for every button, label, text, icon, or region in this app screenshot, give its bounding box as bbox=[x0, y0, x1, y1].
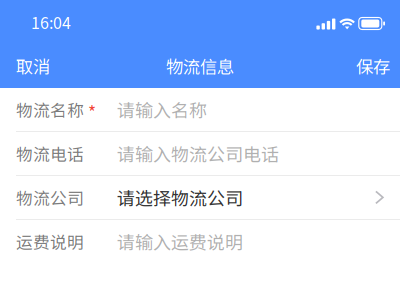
staticText: 取消 bbox=[16, 53, 50, 79]
button[interactable]: 物流电话 bbox=[0, 132, 400, 176]
button[interactable]: 取消 bbox=[0, 44, 66, 88]
staticText: 保存 bbox=[356, 53, 390, 79]
staticText: 运费说明 bbox=[16, 229, 84, 253]
staticText: 物流公司 bbox=[16, 185, 84, 209]
staticText: 物流信息 bbox=[166, 53, 234, 79]
button[interactable]: 物流名称 bbox=[0, 88, 400, 132]
staticText: 16:04 bbox=[31, 10, 71, 34]
staticText: 请输入名称 bbox=[117, 96, 207, 123]
staticText: 物流电话 bbox=[16, 141, 84, 165]
staticText: * bbox=[88, 99, 96, 124]
staticText: 请输入运费说明 bbox=[117, 228, 243, 255]
button[interactable]: 物流公司 bbox=[0, 176, 400, 220]
staticText: 请输入物流公司电话 bbox=[117, 140, 279, 167]
button[interactable]: 运费说明 bbox=[0, 220, 400, 263]
staticText: 物流名称 bbox=[16, 97, 84, 121]
staticText: 请选择物流公司 bbox=[117, 184, 243, 211]
button[interactable]: 保存 bbox=[346, 44, 400, 88]
